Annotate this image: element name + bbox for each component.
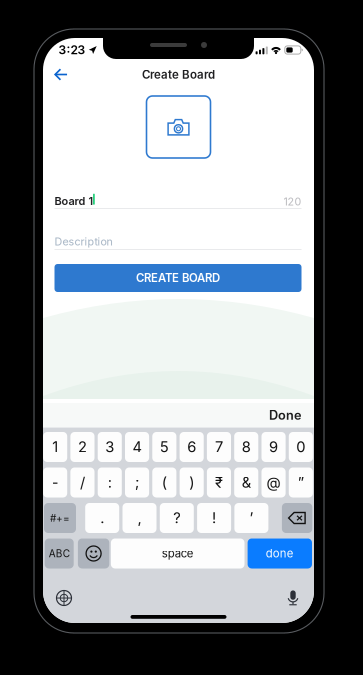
staticText: :	[108, 474, 112, 491]
staticText: Done	[269, 408, 301, 423]
button[interactable]: !	[197, 503, 231, 533]
staticText: 6	[187, 438, 196, 456]
button[interactable]: ;	[125, 467, 149, 497]
staticText: ’	[249, 509, 253, 527]
staticText: ₹	[215, 474, 223, 491]
button[interactable]: CREATE BOARD	[54, 264, 301, 292]
button[interactable]: ₹	[207, 467, 231, 497]
staticText: done	[266, 547, 294, 560]
button[interactable]: 7	[207, 432, 231, 462]
staticText: /	[80, 474, 85, 491]
button[interactable]: 1	[43, 432, 67, 462]
button[interactable]: Done	[269, 403, 314, 427]
button[interactable]: 5	[152, 432, 176, 462]
staticText: 5	[160, 438, 169, 456]
staticText: #+=	[50, 512, 70, 524]
staticText: CREATE BOARD	[136, 271, 220, 285]
staticText: space	[162, 547, 194, 560]
button[interactable]: -	[43, 467, 67, 497]
staticText: Create Board	[142, 68, 215, 81]
button[interactable]: #+=	[44, 503, 76, 533]
button[interactable]: )	[180, 467, 204, 497]
button[interactable]: done	[248, 538, 312, 568]
button[interactable]: 4	[125, 432, 149, 462]
button[interactable]: Add board photo	[146, 96, 210, 158]
staticText: !	[212, 509, 216, 527]
button[interactable]: &	[234, 467, 258, 497]
button[interactable]: @	[261, 467, 286, 497]
staticText: .	[100, 509, 104, 527]
staticText: @	[267, 474, 281, 491]
button[interactable]: 3	[98, 432, 122, 462]
staticText: Description	[54, 235, 112, 248]
staticText: 4	[133, 438, 142, 456]
staticText: 3:23	[58, 43, 85, 57]
button[interactable]: ABC	[45, 538, 74, 568]
button[interactable]: 6	[180, 432, 204, 462]
button[interactable]: /	[70, 467, 94, 497]
staticText: 3	[105, 438, 114, 456]
staticText: Board 1	[54, 194, 93, 207]
staticText: ”	[298, 474, 304, 491]
button[interactable]: ,	[122, 503, 156, 533]
staticText: &	[242, 474, 251, 491]
button[interactable]: Next keyboard	[51, 586, 77, 610]
button[interactable]: ”	[289, 467, 313, 497]
staticText: 2	[78, 438, 87, 456]
button[interactable]: 9	[261, 432, 286, 462]
button[interactable]: 8	[234, 432, 258, 462]
staticText: (	[162, 474, 167, 491]
staticText: 9	[269, 438, 278, 456]
button[interactable]: ’	[234, 503, 268, 533]
button[interactable]: 0	[289, 432, 313, 462]
staticText: ABC	[49, 547, 70, 560]
button[interactable]: Delete	[282, 503, 312, 533]
staticText: 0	[296, 438, 305, 456]
staticText: )	[189, 474, 194, 491]
button[interactable]: 2	[70, 432, 94, 462]
button[interactable]: .	[85, 503, 119, 533]
staticText: ;	[135, 474, 139, 491]
button[interactable]: (	[152, 467, 176, 497]
staticText: 1	[52, 438, 58, 456]
staticText: 7	[215, 438, 223, 456]
staticText: 8	[242, 438, 251, 456]
staticText: -	[52, 474, 59, 491]
button[interactable]: Emoji	[78, 538, 109, 568]
button[interactable]: Back	[43, 59, 79, 90]
button[interactable]: Dictation	[280, 586, 306, 610]
button[interactable]: ?	[160, 503, 194, 533]
button[interactable]: space	[111, 538, 244, 568]
staticText: 120	[283, 195, 301, 208]
staticText: ,	[137, 509, 141, 527]
staticText: ?	[173, 509, 180, 527]
button[interactable]: :	[98, 467, 122, 497]
